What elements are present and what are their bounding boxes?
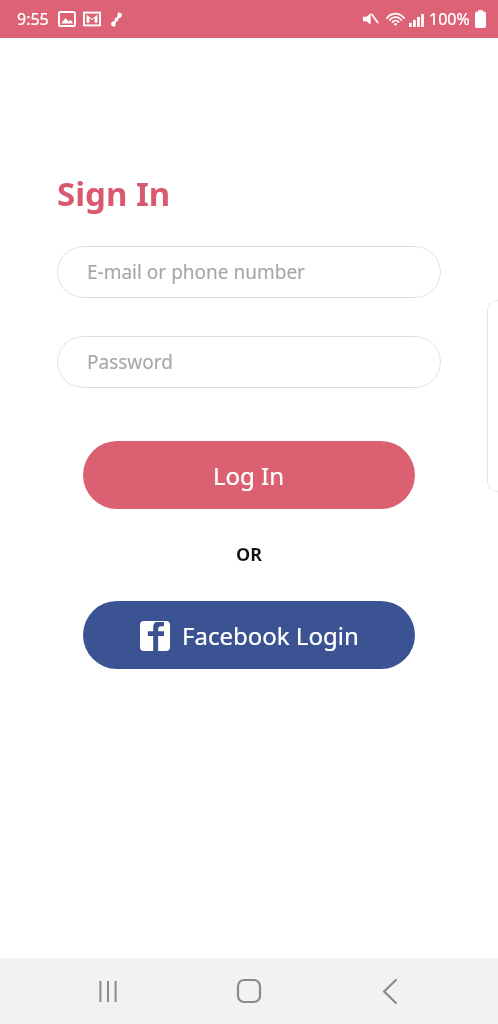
staticText: OR bbox=[0, 542, 498, 567]
button[interactable]: Password bbox=[57, 336, 441, 388]
staticText: 9:55 bbox=[17, 8, 49, 30]
button[interactable]: E-mail or phone number bbox=[57, 246, 441, 298]
staticText: E-mail or phone number bbox=[87, 259, 305, 285]
staticText: Sign In bbox=[57, 171, 171, 216]
button[interactable]: Recents bbox=[75, 958, 141, 1024]
staticText: Log In bbox=[213, 459, 285, 492]
button[interactable]: Facebook Login bbox=[83, 601, 415, 669]
button[interactable]: Home bbox=[216, 958, 282, 1024]
staticText: Password bbox=[87, 349, 173, 375]
staticText: Facebook Login bbox=[182, 619, 359, 652]
staticText: 100% bbox=[429, 8, 470, 30]
button[interactable]: Log In bbox=[83, 441, 415, 509]
button[interactable]: Back bbox=[357, 958, 423, 1024]
